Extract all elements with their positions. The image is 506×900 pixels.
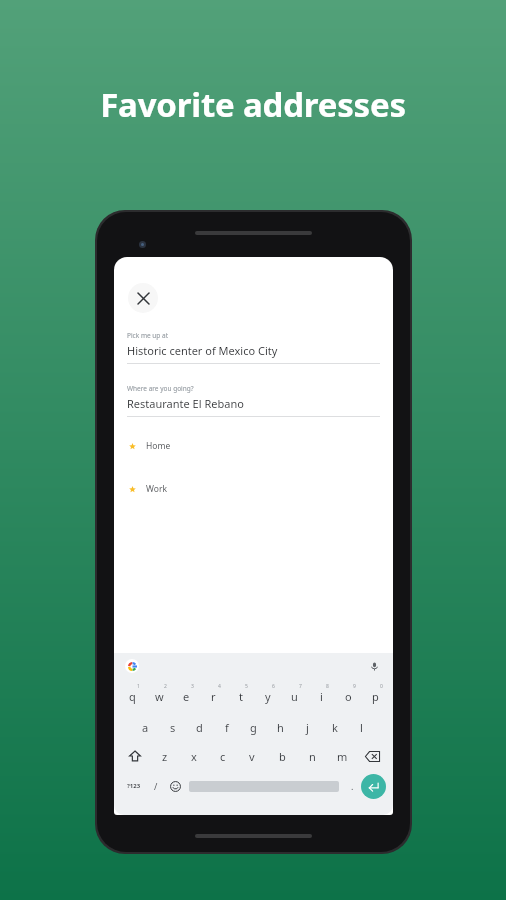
button[interactable]: 0	[362, 680, 389, 708]
button[interactable]: v	[237, 742, 267, 770]
staticText: u	[291, 689, 298, 704]
staticText: 3	[191, 683, 194, 690]
staticText: p	[372, 689, 379, 704]
staticText: b	[279, 749, 286, 764]
button[interactable]: Voice input	[367, 659, 381, 673]
staticText: 6	[272, 683, 275, 690]
staticText: w	[155, 689, 164, 704]
button[interactable]: 2	[146, 680, 173, 708]
button[interactable]: s	[159, 711, 186, 739]
staticText: v	[249, 749, 255, 764]
staticText: t	[239, 689, 243, 704]
staticText: l	[360, 720, 363, 735]
button[interactable]: 7	[281, 680, 308, 708]
button[interactable]: f	[213, 711, 240, 739]
staticText: r	[211, 689, 216, 704]
staticText: j	[306, 720, 309, 735]
staticText: y	[265, 689, 271, 704]
staticText: x	[191, 749, 197, 764]
staticText: z	[162, 749, 168, 764]
button[interactable]: 1	[118, 680, 146, 708]
staticText: 5	[245, 683, 248, 690]
staticText: 1	[137, 683, 140, 690]
staticText: d	[196, 720, 203, 735]
button[interactable]: Work	[114, 480, 393, 498]
button[interactable]: c	[208, 742, 237, 770]
button[interactable]: j	[294, 711, 321, 739]
staticText: m	[337, 749, 348, 764]
button[interactable]: Home	[114, 437, 393, 455]
button[interactable]: ?123	[121, 772, 147, 800]
button[interactable]: n	[297, 742, 327, 770]
button[interactable]: Shift	[120, 742, 150, 770]
staticText: 2	[164, 683, 167, 690]
staticText: /	[154, 780, 158, 792]
button[interactable]: z	[150, 742, 179, 770]
staticText: g	[250, 720, 257, 735]
staticText: 0	[380, 683, 383, 690]
button[interactable]: 9	[335, 680, 362, 708]
button[interactable]: Restaurante El Rebano	[127, 396, 244, 411]
button[interactable]: 6	[254, 680, 281, 708]
staticText: i	[320, 689, 323, 704]
button[interactable]: Enter	[361, 774, 386, 799]
button[interactable]: .	[343, 772, 361, 800]
button[interactable]: 4	[200, 680, 227, 708]
button[interactable]: /	[147, 772, 165, 800]
staticText: n	[309, 749, 316, 764]
button[interactable]: d	[186, 711, 213, 739]
staticText: 4	[218, 683, 221, 690]
staticText: 8	[326, 683, 329, 690]
staticText: ?123	[127, 782, 141, 790]
button[interactable]: x	[179, 742, 208, 770]
button[interactable]: a	[132, 711, 159, 739]
staticText: Work	[146, 483, 167, 495]
button[interactable]: l	[348, 711, 375, 739]
staticText: o	[345, 689, 352, 704]
button[interactable]: b	[267, 742, 297, 770]
staticText: a	[142, 720, 149, 735]
staticText: e	[183, 689, 190, 704]
staticText: q	[129, 689, 136, 704]
button[interactable]: Close	[128, 283, 158, 313]
staticText: c	[220, 749, 226, 764]
staticText: .	[351, 780, 354, 792]
button[interactable]: k	[321, 711, 348, 739]
staticText: f	[225, 720, 229, 735]
button[interactable]: Emoji	[165, 772, 185, 800]
button[interactable]: Historic center of Mexico City	[127, 343, 278, 358]
button[interactable]: g	[240, 711, 267, 739]
button[interactable]: m	[327, 742, 357, 770]
button[interactable]: Backspace	[357, 742, 387, 770]
staticText: h	[277, 720, 284, 735]
button[interactable]: 3	[173, 680, 200, 708]
staticText: Pick me up at	[127, 331, 169, 340]
staticText: Favorite addresses	[0, 82, 506, 127]
staticText: s	[170, 720, 176, 735]
staticText: Home	[146, 440, 171, 452]
staticText: k	[332, 720, 338, 735]
staticText: 9	[353, 683, 356, 690]
staticText: 7	[299, 683, 302, 690]
button[interactable]: 5	[227, 680, 254, 708]
button[interactable]: 8	[308, 680, 335, 708]
button[interactable]: h	[267, 711, 294, 739]
staticText: Where are you going?	[127, 384, 194, 393]
button[interactable]: Google	[125, 659, 139, 673]
